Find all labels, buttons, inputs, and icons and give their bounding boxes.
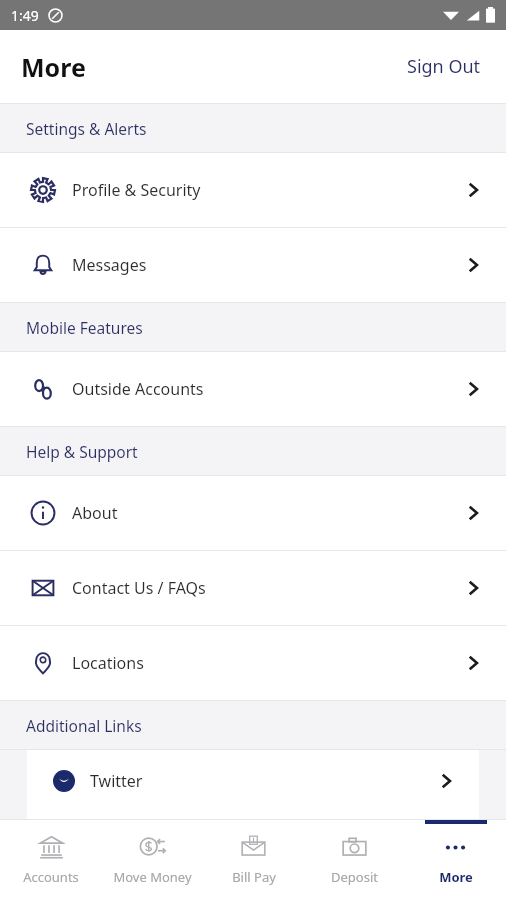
staticText: Sign Out [407, 54, 481, 79]
button[interactable]: Contact Us / FAQs [0, 551, 506, 625]
staticText: Messages [72, 254, 147, 276]
staticText: Mobile Features [26, 317, 143, 338]
staticText: Additional Links [26, 715, 142, 736]
staticText: 1:49 [11, 6, 39, 25]
staticText: Locations [72, 652, 144, 674]
staticText: Bill Pay [232, 868, 276, 886]
button[interactable]: Locations [0, 626, 506, 700]
staticText: Move Money [113, 868, 192, 886]
button[interactable]: Profile & Security [0, 153, 506, 227]
staticText: Profile & Security [72, 179, 201, 201]
button[interactable]: Messages [0, 228, 506, 302]
staticText: Deposit [331, 868, 378, 886]
button[interactable]: Bill Pay [203, 820, 304, 900]
button[interactable]: Outside Accounts [0, 352, 506, 426]
button[interactable]: Twitter [27, 750, 479, 812]
button[interactable]: Accounts [0, 820, 102, 900]
button[interactable]: About [0, 476, 506, 550]
button[interactable]: More [405, 820, 506, 900]
button[interactable]: Sign Out [401, 48, 487, 85]
staticText: Outside Accounts [72, 378, 204, 400]
button[interactable]: Move Money [102, 820, 203, 900]
staticText: Contact Us / FAQs [72, 577, 206, 599]
staticText: Accounts [23, 868, 79, 886]
button[interactable]: Deposit [304, 820, 405, 900]
staticText: Twitter [90, 770, 143, 792]
staticText: Help & Support [26, 441, 138, 462]
staticText: More [439, 868, 473, 886]
staticText: More [21, 50, 86, 84]
staticText: About [72, 502, 118, 524]
staticText: Settings & Alerts [26, 118, 147, 139]
